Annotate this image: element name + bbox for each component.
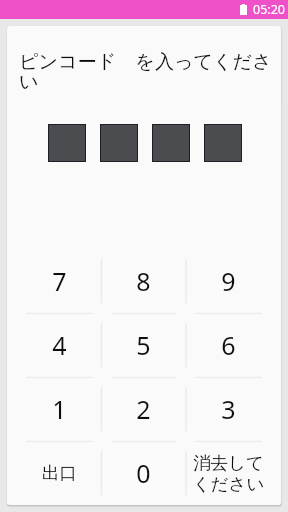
- staticText: 5: [136, 328, 151, 362]
- button[interactable]: 9: [186, 249, 271, 313]
- button[interactable]: 2: [101, 377, 186, 441]
- staticText: 2: [136, 392, 151, 426]
- staticText: 8: [136, 264, 151, 298]
- staticText: 7: [52, 264, 67, 298]
- staticText: 6: [221, 328, 236, 362]
- button[interactable]: 4: [17, 313, 101, 377]
- button[interactable]: 6: [186, 313, 271, 377]
- button[interactable]: 5: [101, 313, 186, 377]
- staticText: 消去してください: [187, 452, 270, 495]
- button[interactable]: 7: [17, 249, 101, 313]
- staticText: 0: [136, 456, 151, 490]
- button[interactable]: 3: [186, 377, 271, 441]
- staticText: 出口: [42, 462, 77, 484]
- button[interactable]: 出口: [17, 441, 101, 505]
- staticText: ピンコード を入ってください: [19, 48, 280, 93]
- staticText: 9: [221, 264, 236, 298]
- staticText: 3: [221, 392, 236, 426]
- button[interactable]: 8: [101, 249, 186, 313]
- button[interactable]: 1: [17, 377, 101, 441]
- staticText: 05:20: [253, 1, 285, 18]
- other: Battery: [240, 4, 247, 15]
- button[interactable]: 消去してください: [186, 441, 271, 505]
- staticText: 4: [52, 328, 67, 362]
- button[interactable]: 0: [101, 441, 186, 505]
- staticText: 1: [52, 392, 67, 426]
